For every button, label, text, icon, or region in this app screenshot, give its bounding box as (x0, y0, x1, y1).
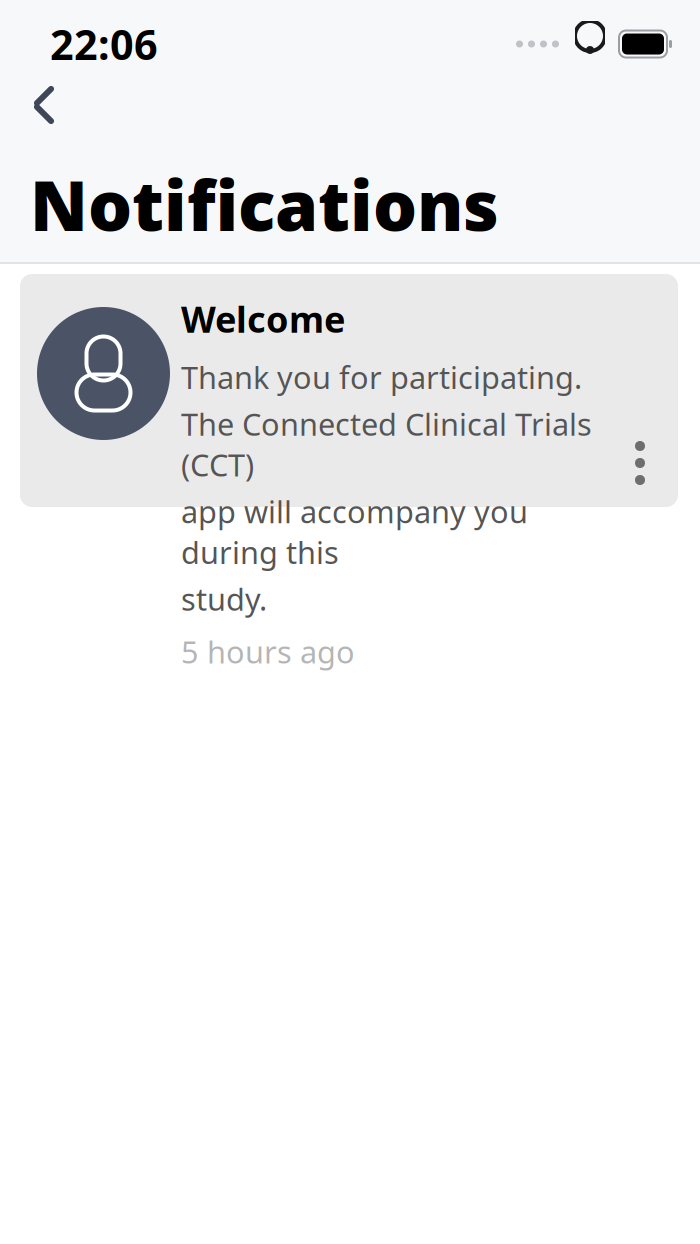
button[interactable]: Back (8, 74, 80, 136)
button[interactable]: More options (612, 432, 668, 494)
staticText: Welcome (181, 295, 345, 343)
staticText: app will accompany you during this (181, 491, 528, 572)
staticText: The Connected Clinical Trials (CCT) (181, 403, 592, 485)
staticText: 22:06 (50, 17, 158, 71)
staticText: Notifications (30, 158, 499, 250)
staticText: Thank you for participating. (181, 357, 582, 397)
staticText: 5 hours ago (181, 631, 355, 672)
staticText: study. (181, 578, 267, 619)
button[interactable]: Welcome (20, 274, 678, 507)
